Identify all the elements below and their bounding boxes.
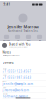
staticText: website (2, 93, 7, 95)
staticText: work (2, 81, 6, 82)
button[interactable]: video (23, 35, 34, 41)
staticText: Jennifer Morrow (7, 24, 38, 29)
button[interactable]: email (0, 86, 46, 93)
staticText: message (3, 40, 10, 41)
button[interactable]: call (12, 35, 23, 41)
staticText: northwind.example (2, 95, 28, 98)
staticText: Notes (2, 51, 10, 54)
staticText: email (2, 87, 5, 89)
staticText: Shared with You (9, 43, 31, 46)
button[interactable]: mobile (0, 68, 46, 74)
staticText: call (16, 40, 18, 41)
staticText: +1 (555) 987-6543 (2, 76, 31, 79)
staticText: mobile (2, 68, 6, 70)
button[interactable]: website (0, 93, 46, 99)
staticText: Contact (2, 61, 13, 64)
button[interactable]: message (1, 35, 12, 41)
button[interactable]: Shared with You (0, 43, 46, 48)
staticText: +1 (555) 123-4567 (2, 70, 31, 73)
staticText: mail (38, 40, 40, 41)
staticText: home (2, 74, 6, 76)
staticText: Met at the June conference. (2, 55, 19, 56)
staticText: jennifer@example.com (2, 82, 32, 86)
button[interactable]: mail (34, 35, 45, 41)
button[interactable]: home (0, 74, 46, 80)
staticText: Northwind Traders Inc. (7, 29, 38, 33)
staticText: j.morrow@work.com (2, 88, 28, 92)
staticText: 9:41 (3, 3, 10, 6)
staticText: video (26, 40, 30, 41)
button[interactable]: work (0, 80, 46, 86)
staticText: Photos, Links, and Locations (9, 46, 28, 48)
